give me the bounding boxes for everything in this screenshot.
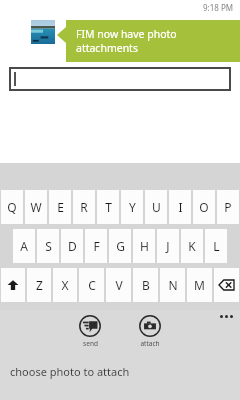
button[interactable]: G — [109, 229, 131, 263]
staticText: E — [57, 199, 64, 215]
button[interactable]: N — [160, 268, 185, 302]
button[interactable]: M — [187, 268, 212, 302]
button[interactable]: Y — [121, 190, 143, 224]
staticText: M — [194, 277, 205, 293]
staticText: P — [224, 199, 232, 215]
staticText: C — [88, 277, 96, 293]
staticText: T — [105, 199, 112, 215]
staticText: FIM now have photo attachments — [76, 27, 237, 55]
button[interactable]: S — [37, 229, 59, 263]
button[interactable]: O — [193, 190, 215, 224]
button[interactable]: K — [181, 229, 203, 263]
button[interactable]: W — [25, 190, 47, 224]
staticText: Y — [129, 199, 136, 215]
button[interactable]: U — [145, 190, 167, 224]
button[interactable]: D — [61, 229, 83, 263]
button[interactable]: R — [73, 190, 95, 224]
staticText: O — [199, 199, 209, 215]
staticText: S — [45, 238, 52, 254]
staticText: A — [20, 238, 28, 254]
button[interactable]: B — [133, 268, 158, 302]
button[interactable]: H — [133, 229, 155, 263]
staticText: D — [68, 238, 77, 254]
button[interactable]: L — [205, 229, 227, 263]
staticText: H — [140, 238, 149, 254]
staticText: V — [115, 277, 123, 293]
staticText: N — [168, 277, 178, 293]
button[interactable]: F — [85, 229, 107, 263]
button[interactable]: FIM now have photo attachments — [57, 20, 240, 62]
staticText: Z — [36, 277, 43, 293]
staticText: send — [83, 339, 98, 348]
button[interactable]: C — [79, 268, 104, 302]
staticText: L — [213, 238, 220, 254]
staticText: attach — [140, 339, 160, 348]
button[interactable]: I — [169, 190, 191, 224]
button[interactable]: T — [97, 190, 119, 224]
staticText: B — [142, 277, 150, 293]
staticText: F — [93, 238, 100, 254]
staticText: W — [30, 199, 42, 215]
button[interactable]: attach — [129, 315, 171, 348]
staticText: 9:18 PM — [203, 2, 234, 13]
button[interactable] — [9, 67, 231, 91]
button[interactable]: send — [69, 315, 111, 348]
staticText: Q — [7, 199, 17, 215]
button[interactable]: More options — [220, 315, 233, 318]
button[interactable]: E — [49, 190, 71, 224]
staticText: K — [188, 238, 196, 254]
button[interactable]: Backspace — [214, 268, 239, 302]
staticText: I — [178, 199, 183, 215]
button[interactable]: X — [53, 268, 77, 302]
staticText: X — [61, 277, 69, 293]
button[interactable]: Photo thumbnail — [31, 20, 55, 44]
button[interactable]: P — [217, 190, 239, 224]
button[interactable]: J — [157, 229, 179, 263]
staticText: R — [80, 199, 88, 215]
button[interactable]: Z — [27, 268, 51, 302]
button[interactable]: Shift — [1, 268, 25, 302]
button[interactable]: A — [13, 229, 35, 263]
staticText: choose photo to attach — [10, 364, 130, 379]
staticText: U — [152, 199, 161, 215]
staticText: J — [166, 238, 170, 254]
button[interactable]: V — [106, 268, 131, 302]
button[interactable]: Q — [1, 190, 23, 224]
staticText: G — [116, 238, 125, 254]
